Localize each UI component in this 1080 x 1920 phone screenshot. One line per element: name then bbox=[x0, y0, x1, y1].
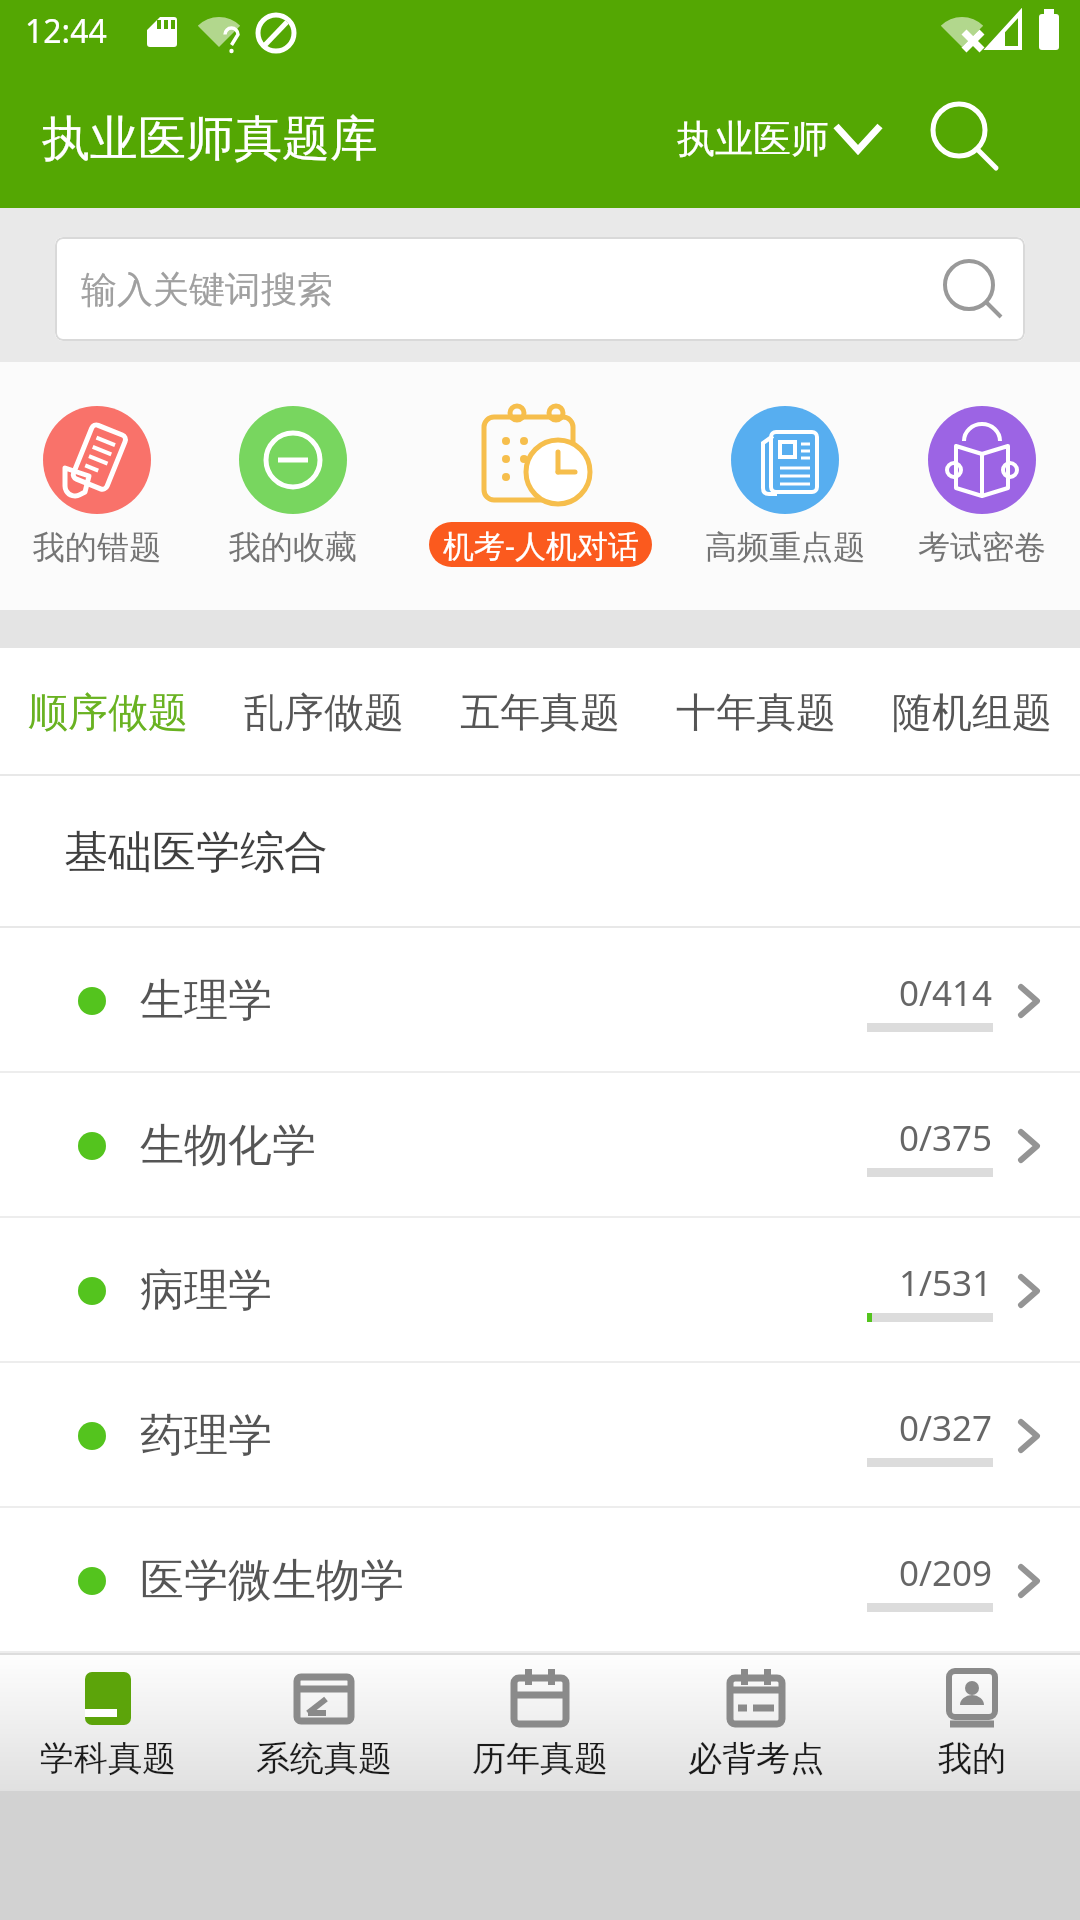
staticText: 五年真题 bbox=[460, 687, 620, 737]
button[interactable]: 我的 bbox=[864, 1653, 1080, 1791]
button[interactable]: 病理学 bbox=[0, 1218, 1080, 1363]
staticText: 0/375 bbox=[899, 1114, 993, 1162]
button[interactable]: 输入关键词搜索 bbox=[55, 237, 1025, 341]
staticText: 我的 bbox=[938, 1737, 1006, 1780]
button[interactable]: 医学微生物学 bbox=[0, 1508, 1080, 1653]
button[interactable]: 生物化学 bbox=[0, 1073, 1080, 1218]
button[interactable]: 十年真题 bbox=[648, 648, 864, 776]
button[interactable]: 执业医师 bbox=[677, 112, 837, 166]
staticText: 医学微生物学 bbox=[140, 1553, 404, 1608]
staticText: 历年真题 bbox=[472, 1737, 608, 1780]
button[interactable] bbox=[928, 406, 1036, 514]
button[interactable]: 必背考点 bbox=[648, 1653, 864, 1791]
staticText: 12:44 bbox=[25, 9, 107, 53]
button[interactable] bbox=[920, 95, 1030, 185]
button[interactable]: 机考-人机对话 bbox=[429, 522, 652, 567]
button[interactable]: 随机组题 bbox=[864, 648, 1080, 776]
button[interactable] bbox=[239, 406, 347, 514]
staticText: 必背考点 bbox=[688, 1737, 824, 1780]
staticText: 0/209 bbox=[899, 1549, 993, 1597]
button[interactable] bbox=[731, 406, 839, 514]
staticText: 高频重点题 bbox=[705, 527, 865, 567]
staticText: 输入关键词搜索 bbox=[81, 267, 333, 312]
button[interactable]: 历年真题 bbox=[432, 1653, 648, 1791]
staticText: 基础医学综合 bbox=[64, 825, 328, 880]
staticText: 生理学 bbox=[140, 973, 272, 1028]
staticText: 执业医师真题库 bbox=[42, 109, 378, 169]
staticText: 生物化学 bbox=[140, 1118, 316, 1173]
staticText: 我的错题 bbox=[33, 527, 161, 567]
staticText: 药理学 bbox=[140, 1408, 272, 1463]
staticText: 考试密卷 bbox=[918, 527, 1046, 567]
staticText: 十年真题 bbox=[676, 687, 836, 737]
button[interactable]: 五年真题 bbox=[432, 648, 648, 776]
staticText: 0/327 bbox=[899, 1404, 993, 1452]
staticText: 系统真题 bbox=[256, 1737, 392, 1780]
button[interactable]: 药理学 bbox=[0, 1363, 1080, 1508]
button[interactable]: 生理学 bbox=[0, 928, 1080, 1073]
staticText: 顺序做题 bbox=[28, 687, 188, 737]
button[interactable] bbox=[43, 406, 151, 514]
staticText: 机考-人机对话 bbox=[443, 524, 639, 566]
staticText: 乱序做题 bbox=[244, 687, 404, 737]
staticText: 执业医师 bbox=[677, 115, 829, 163]
button[interactable]: 系统真题 bbox=[216, 1653, 432, 1791]
button[interactable]: 顺序做题 bbox=[0, 648, 216, 776]
staticText: 0/414 bbox=[899, 969, 993, 1017]
staticText: 随机组题 bbox=[892, 687, 1052, 737]
button[interactable]: 乱序做题 bbox=[216, 648, 432, 776]
button[interactable]: 学科真题 bbox=[0, 1653, 216, 1791]
staticText: 学科真题 bbox=[40, 1737, 176, 1780]
staticText: 病理学 bbox=[140, 1263, 272, 1318]
staticText: 1/531 bbox=[899, 1259, 993, 1307]
staticText: 我的收藏 bbox=[229, 527, 357, 567]
button[interactable] bbox=[475, 400, 605, 520]
